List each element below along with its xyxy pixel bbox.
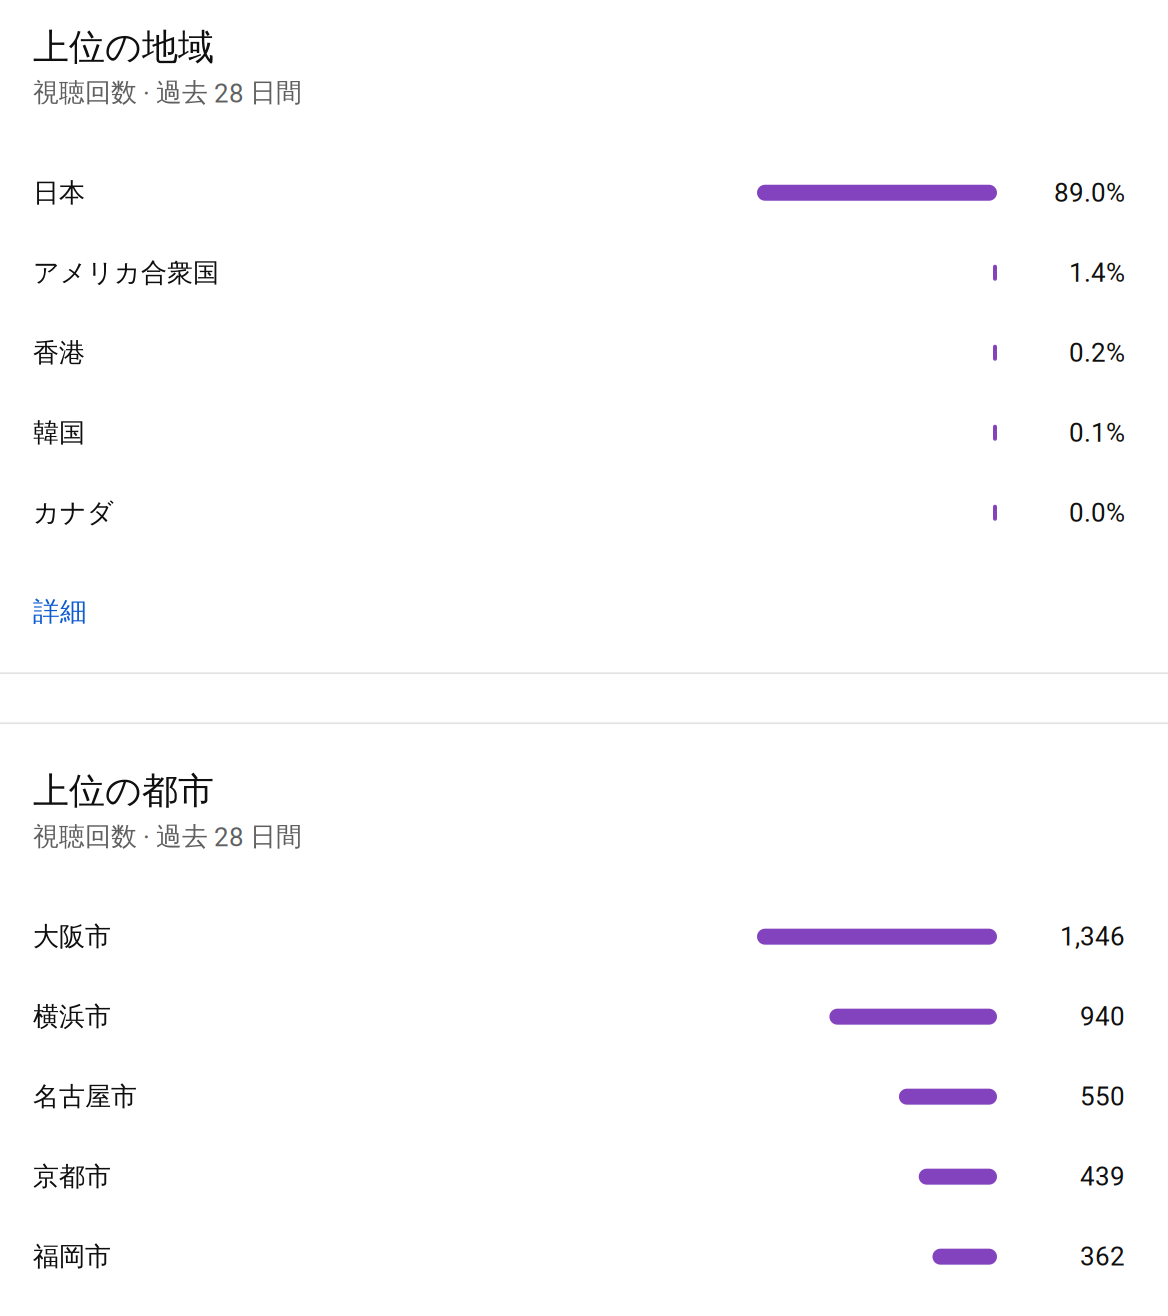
staticText: 1,346 [1060, 921, 1125, 952]
staticText: 視聴回数 · 過去 28 日間 [33, 76, 302, 109]
staticText: カナダ [33, 496, 114, 529]
staticText: アメリカ合衆国 [33, 256, 219, 289]
staticText: 上位の地域 [33, 24, 214, 70]
staticText: 日本 [33, 176, 85, 209]
staticText: 福岡市 [33, 1240, 111, 1273]
staticText: 視聴回数 · 過去 28 日間 [33, 820, 302, 853]
staticText: 韓国 [33, 416, 85, 449]
staticText: 0.2% [1069, 337, 1125, 368]
staticText: 京都市 [33, 1160, 111, 1193]
staticText: 362 [1080, 1241, 1125, 1272]
staticText: 0.1% [1069, 417, 1125, 448]
staticText: 550 [1080, 1081, 1125, 1112]
staticText: 89.0% [1054, 177, 1125, 208]
button[interactable]: 詳細 [0, 591, 111, 632]
staticText: 439 [1080, 1161, 1125, 1192]
staticText: 上位の都市 [33, 768, 214, 814]
staticText: 横浜市 [33, 1000, 111, 1033]
staticText: 香港 [33, 336, 85, 369]
staticText: 詳細 [33, 595, 87, 628]
staticText: 名古屋市 [33, 1080, 137, 1113]
staticText: 940 [1080, 1001, 1125, 1032]
staticText: 0.0% [1069, 497, 1125, 528]
staticText: 1.4% [1069, 257, 1125, 288]
staticText: 大阪市 [33, 920, 111, 953]
